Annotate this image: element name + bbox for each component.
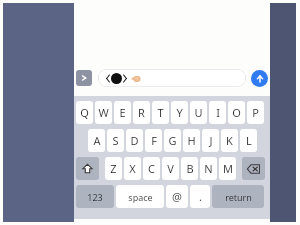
staticText: K [226, 133, 233, 148]
staticText: Y [176, 105, 183, 120]
staticText: space [128, 191, 153, 203]
button[interactable]: H [183, 129, 200, 152]
button[interactable]: . [190, 185, 210, 208]
staticText: E [119, 105, 126, 120]
staticText: return [225, 191, 252, 203]
button[interactable]: L [240, 129, 257, 152]
button[interactable]: R [133, 101, 150, 124]
button[interactable]: Backspace [242, 157, 265, 180]
staticText: V [167, 161, 174, 176]
button[interactable]: N [200, 157, 217, 180]
staticText: N [204, 161, 213, 176]
button[interactable]: X [124, 157, 141, 180]
staticText: I [216, 105, 220, 120]
button[interactable]: return [212, 185, 264, 208]
button[interactable]: U [190, 101, 207, 124]
staticText: W [98, 105, 109, 120]
staticText: D [130, 133, 139, 148]
button[interactable]: T [152, 101, 169, 124]
button[interactable]: space [116, 185, 164, 208]
button[interactable]: Y [171, 101, 188, 124]
staticText: @ [172, 189, 182, 204]
staticText: J [209, 133, 213, 148]
staticText: M [223, 161, 233, 176]
button[interactable]: C [143, 157, 160, 180]
staticText: G [168, 133, 177, 148]
staticText: S [112, 133, 119, 148]
button[interactable]: G [164, 129, 181, 152]
staticText: Q [80, 105, 89, 120]
button[interactable]: F [145, 129, 162, 152]
staticText: U [194, 105, 203, 120]
button[interactable]: K [221, 129, 238, 152]
staticText: L [246, 133, 252, 148]
button[interactable]: A [88, 129, 105, 152]
button[interactable]: D [126, 129, 143, 152]
button[interactable]: P [247, 101, 264, 124]
staticText: O [232, 105, 241, 120]
button[interactable]: W [95, 101, 112, 124]
button[interactable]: E [114, 101, 131, 124]
button[interactable]: Expand [76, 70, 92, 86]
staticText: P [252, 105, 259, 120]
button[interactable]: O [228, 101, 245, 124]
staticText: B [186, 161, 194, 176]
button[interactable]: I [209, 101, 226, 124]
staticText: Z [110, 161, 117, 176]
button[interactable]: V [162, 157, 179, 180]
button[interactable]: M [219, 157, 236, 180]
button[interactable]: 123 [76, 185, 114, 208]
button[interactable]: Q [76, 101, 93, 124]
staticText: . [199, 189, 202, 204]
staticText: H [187, 133, 196, 148]
button[interactable]: Shift [76, 157, 99, 180]
staticText: 123 [87, 191, 103, 203]
button[interactable]: Z [105, 157, 122, 180]
button[interactable]: @ [166, 185, 188, 208]
button[interactable]: S [107, 129, 124, 152]
button[interactable]: B [181, 157, 198, 180]
staticText: X [129, 161, 136, 176]
staticText: A [93, 133, 101, 148]
button[interactable]: J [202, 129, 219, 152]
staticText: F [151, 133, 157, 148]
staticText: T [157, 105, 164, 120]
staticText: C [148, 161, 155, 176]
button[interactable] [98, 69, 246, 87]
button[interactable]: Send [251, 70, 268, 87]
staticText: R [138, 105, 145, 120]
